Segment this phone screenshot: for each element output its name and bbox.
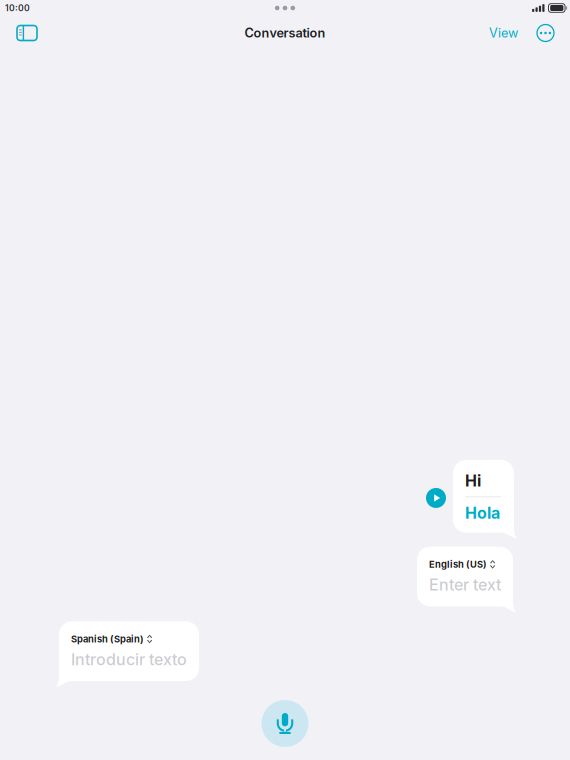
staticText: Enter text — [429, 575, 501, 594]
staticText: Conversation — [244, 25, 325, 41]
button[interactable]: Play translation — [426, 488, 446, 508]
button[interactable]: English (US) — [417, 547, 513, 612]
staticText: 10:00 — [5, 3, 30, 13]
staticText: Hola — [465, 503, 500, 523]
staticText: Hi — [465, 471, 481, 490]
button[interactable]: Toggle Sidebar — [13, 20, 41, 46]
staticText: View — [489, 25, 518, 41]
button[interactable]: Spanish (Spain) — [59, 621, 199, 687]
button[interactable]: More options — [523, 20, 557, 45]
staticText: Spanish (Spain) — [71, 633, 144, 645]
button[interactable]: Record — [261, 700, 308, 747]
button[interactable]: View — [484, 19, 523, 47]
staticText: English (US) — [429, 559, 487, 570]
staticText: Introducir texto — [71, 650, 187, 669]
